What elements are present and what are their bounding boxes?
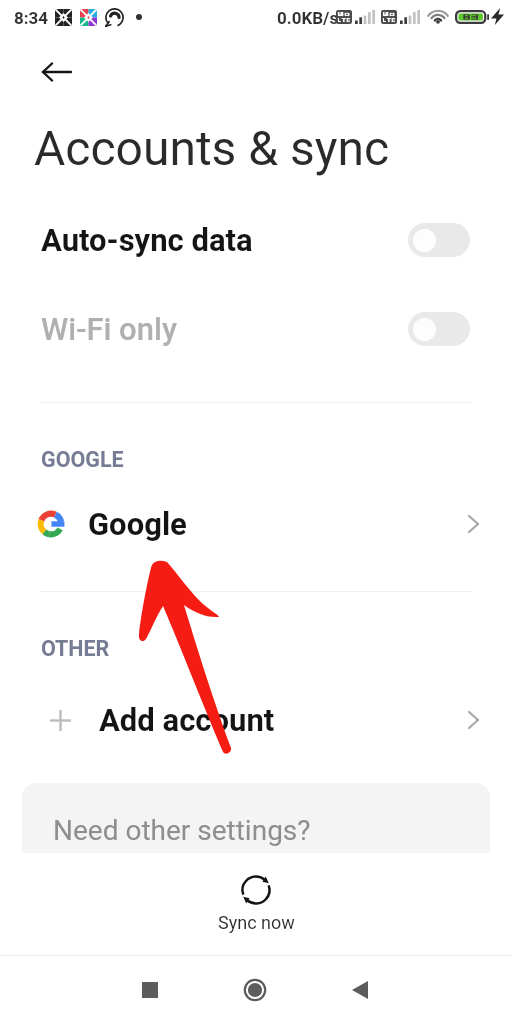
staticText: OTHER: [41, 636, 110, 661]
staticText: Accounts & sync: [34, 120, 390, 176]
staticText: Wi-Fi only: [41, 311, 178, 347]
staticText: Sync now: [218, 912, 295, 933]
staticText: Google: [88, 506, 187, 542]
button[interactable]: Auto-sync data: [0, 208, 512, 272]
button[interactable]: Back: [336, 966, 384, 1014]
staticText: 8:34: [14, 8, 49, 28]
button[interactable]: Add account: [0, 690, 512, 750]
button[interactable]: Sync now: [195, 868, 315, 934]
staticText: Need other settings?: [53, 814, 311, 847]
staticText: Add account: [99, 702, 275, 738]
button[interactable]: Need other settings?: [22, 783, 490, 853]
button[interactable]: Home: [231, 966, 279, 1014]
button[interactable]: Google: [0, 494, 512, 554]
button[interactable]: Back: [23, 46, 91, 98]
staticText: Auto-sync data: [41, 222, 253, 258]
button[interactable]: Wi-Fi only: [0, 297, 512, 361]
staticText: 0.0KB/s: [277, 8, 339, 28]
staticText: GOOGLE: [41, 447, 124, 472]
button[interactable]: Recent apps: [126, 966, 174, 1014]
